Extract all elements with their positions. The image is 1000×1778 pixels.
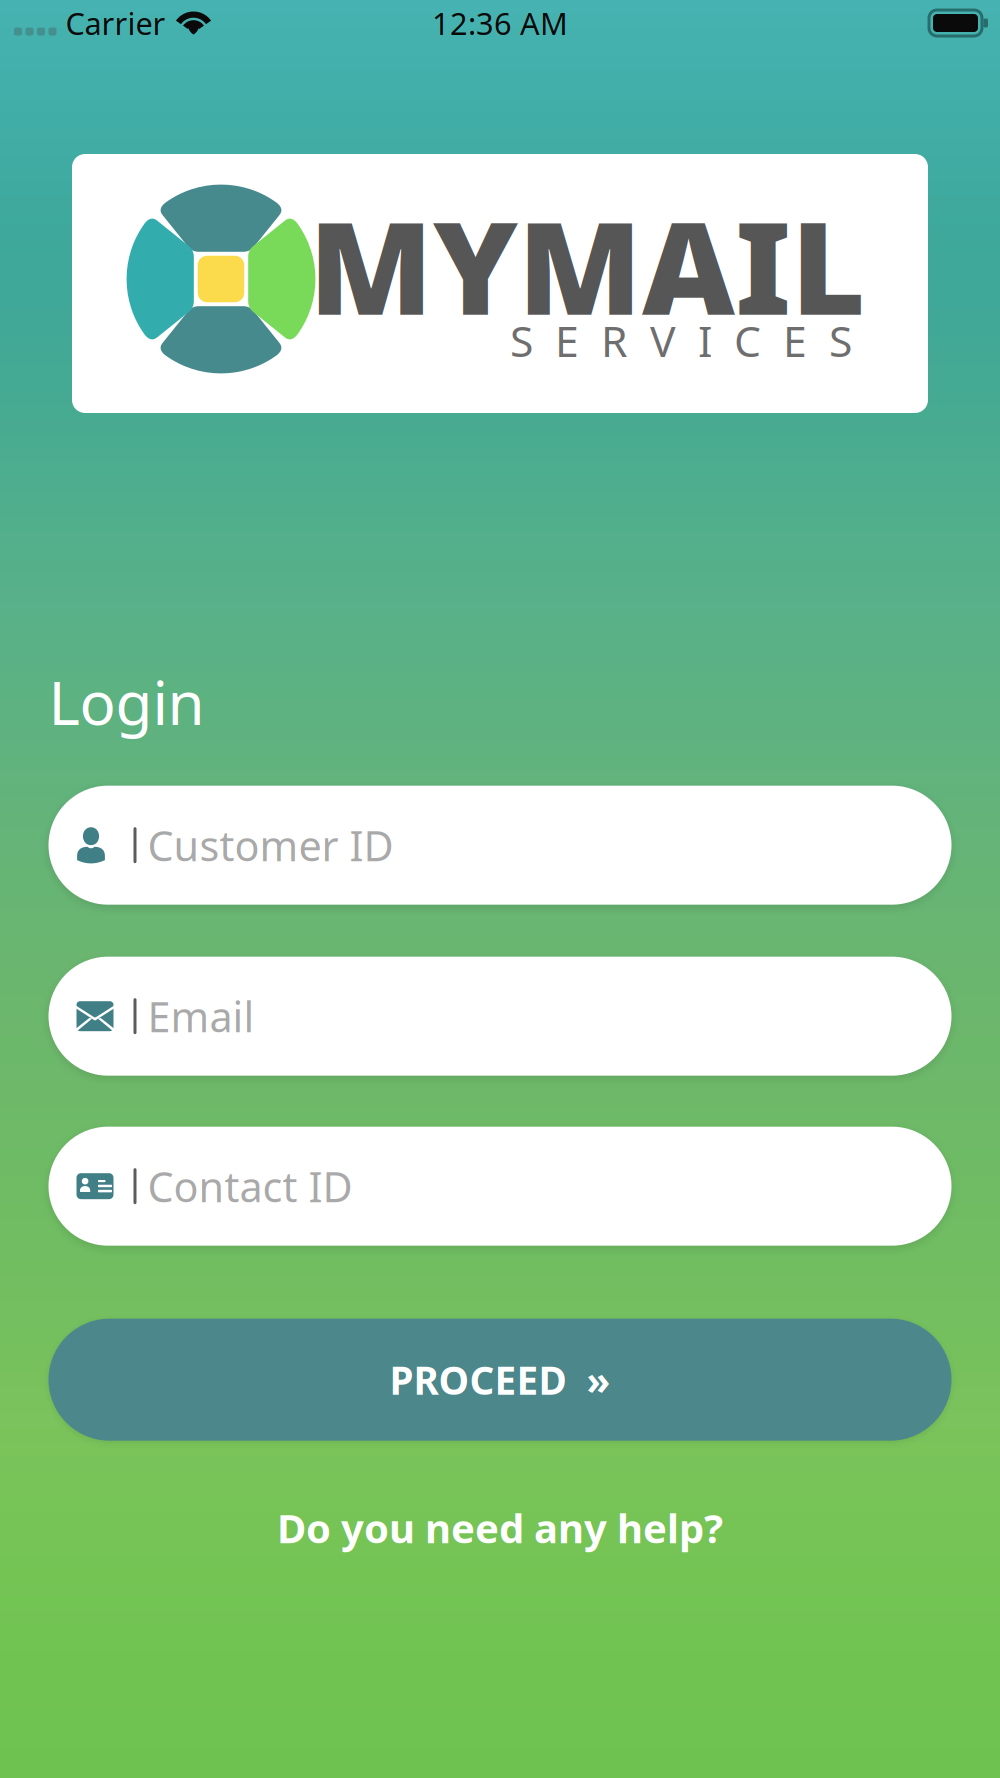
staticText: Carrier [65,3,165,43]
staticText: Login [48,662,204,742]
button[interactable]: Email [48,957,951,1076]
staticText: PROCEED » [389,1354,610,1405]
staticText: Do you need any help? [277,1501,723,1554]
button[interactable]: Contact ID [48,1127,951,1246]
staticText: S E R V I C E S [510,312,852,369]
staticText: Customer ID [147,818,393,873]
button[interactable]: Do you need any help? [48,1500,951,1556]
button[interactable]: PROCEED » [48,1319,951,1441]
staticText: Email [147,989,254,1044]
staticText: 12:36 AM [432,3,568,43]
button[interactable]: Customer ID [48,786,951,905]
staticText: Contact ID [147,1159,352,1214]
staticText: MYMAIL [309,180,865,350]
